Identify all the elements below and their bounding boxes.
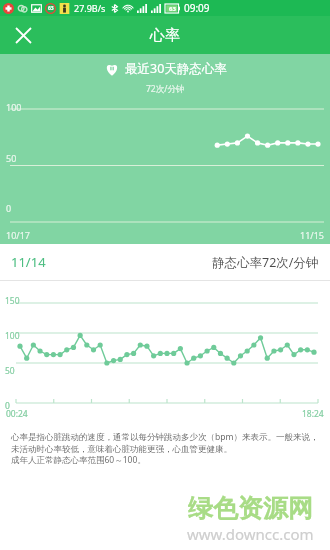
staticText: 63 [48,5,54,12]
staticText: 绿色资源网 [188,493,313,524]
staticText: 11/15 [300,229,324,241]
staticText: 00:24 [6,408,28,420]
staticText: 静态心率72次/分钟 [212,254,319,271]
staticText: 50 [5,365,15,377]
staticText: 63 [169,5,176,13]
staticText: 10/17 [6,229,30,241]
staticText: 最近30天静态心率 [125,60,227,77]
staticText: 09:09 [184,1,210,15]
staticText: 0 [6,202,12,214]
staticText: 18:24 [302,408,324,420]
staticText: 27.9B/s [74,2,106,14]
staticText: 100 [5,330,20,342]
staticText: 150 [5,295,20,307]
staticText: 72次/分钟 [146,83,185,95]
staticText: 0 [5,400,10,412]
button[interactable]: Close [8,20,38,50]
staticText: 50 [6,152,17,164]
staticText: 100 [6,101,22,113]
staticText: 11/14 [11,253,46,271]
staticText: www.downcc.com [187,524,314,544]
staticText: 心率是指心脏跳动的速度，通常以每分钟跳动多少次（bpm）来表示。一般来说，未活动… [11,431,320,454]
button[interactable]: 11/14 [0,244,330,280]
staticText: 心率 [150,26,180,45]
staticText: 成年人正常静态心率范围60～100。 [11,454,146,466]
